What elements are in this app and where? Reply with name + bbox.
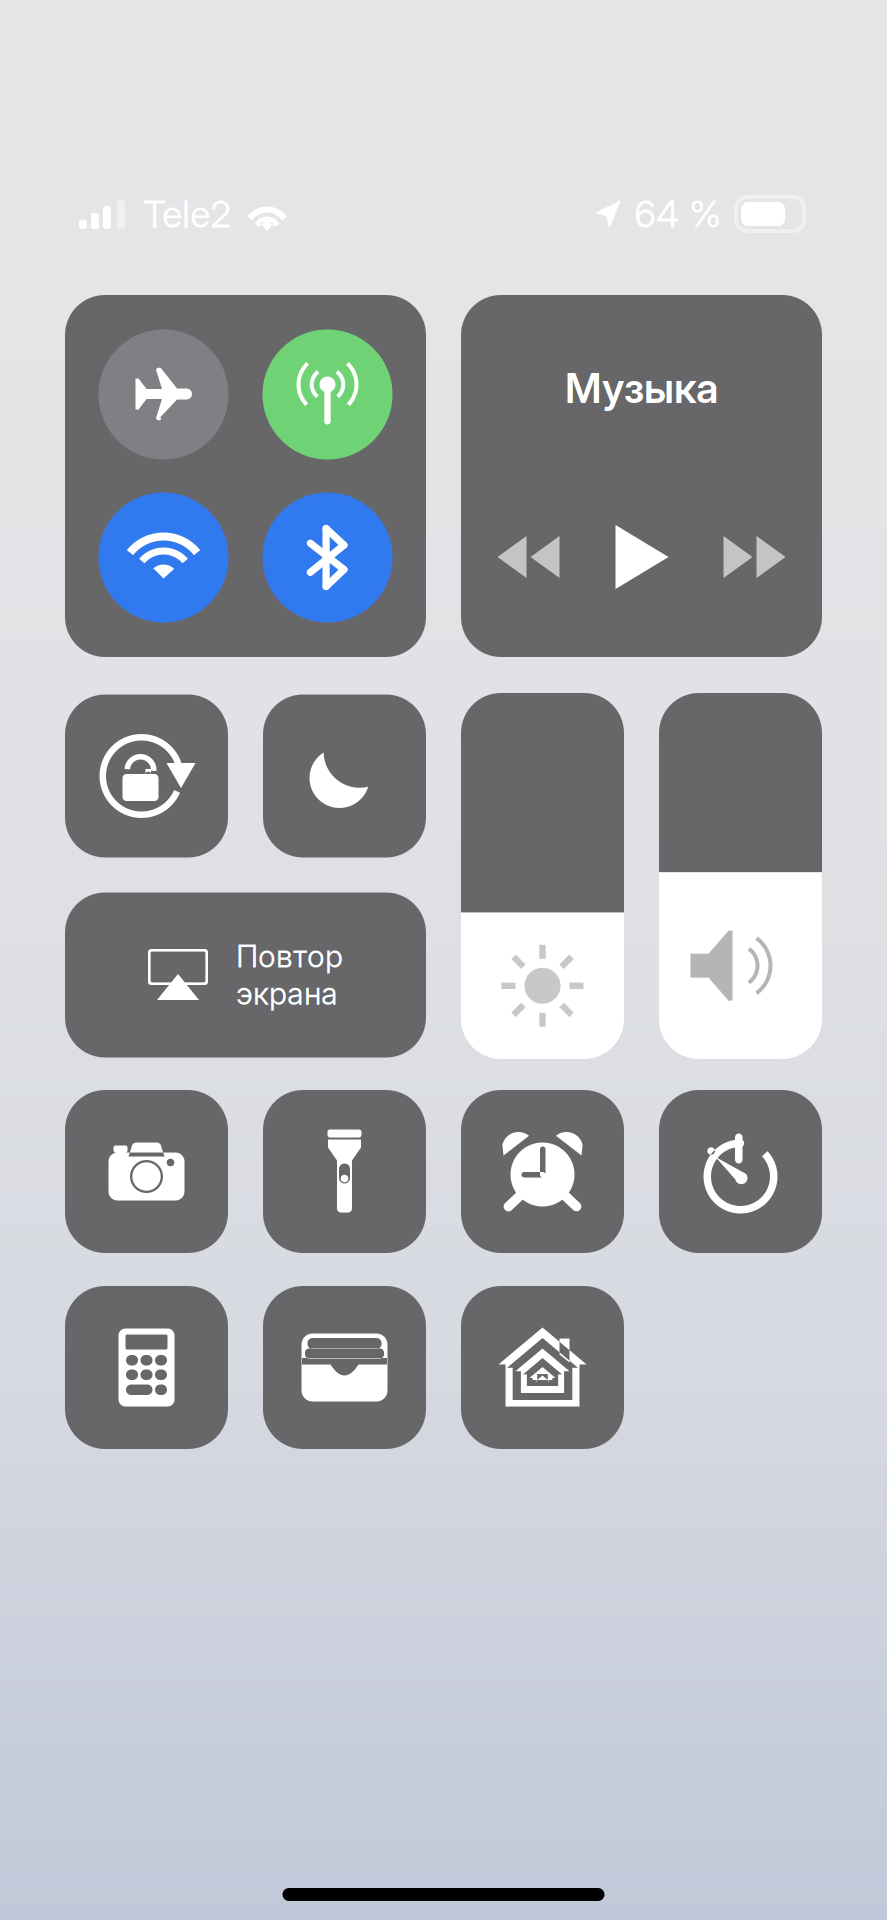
staticText: Tele2	[143, 191, 231, 237]
staticText: 64 %	[634, 191, 722, 237]
button[interactable]: Calculator	[65, 1286, 228, 1449]
button[interactable]: Home	[461, 1286, 624, 1449]
button[interactable]: Volume	[659, 693, 822, 1059]
button[interactable]: Camera	[65, 1090, 228, 1253]
button[interactable]: Bluetooth	[262, 492, 392, 622]
button[interactable]: Do Not Disturb	[263, 694, 426, 857]
staticText: Повтор	[236, 938, 343, 975]
button[interactable]: Cellular Data	[262, 329, 392, 459]
button[interactable]: Screen Mirroring	[65, 892, 426, 1057]
button[interactable]: Alarm	[461, 1090, 624, 1253]
staticText: Музыка	[565, 363, 718, 413]
button[interactable]: Previous track	[471, 520, 585, 594]
button[interactable]: Wi-Fi	[98, 492, 228, 622]
button[interactable]: Portrait Orientation Lock	[65, 694, 228, 857]
button[interactable]: Wallet	[263, 1286, 426, 1449]
button[interactable]: Play	[585, 520, 697, 594]
staticText: экрана	[236, 975, 338, 1012]
button[interactable]: Timer	[659, 1090, 822, 1253]
button[interactable]: Airplane Mode	[98, 329, 228, 459]
button[interactable]: Brightness	[461, 693, 624, 1059]
button[interactable]: Next track	[697, 520, 811, 594]
button[interactable]: Flashlight	[263, 1090, 426, 1253]
